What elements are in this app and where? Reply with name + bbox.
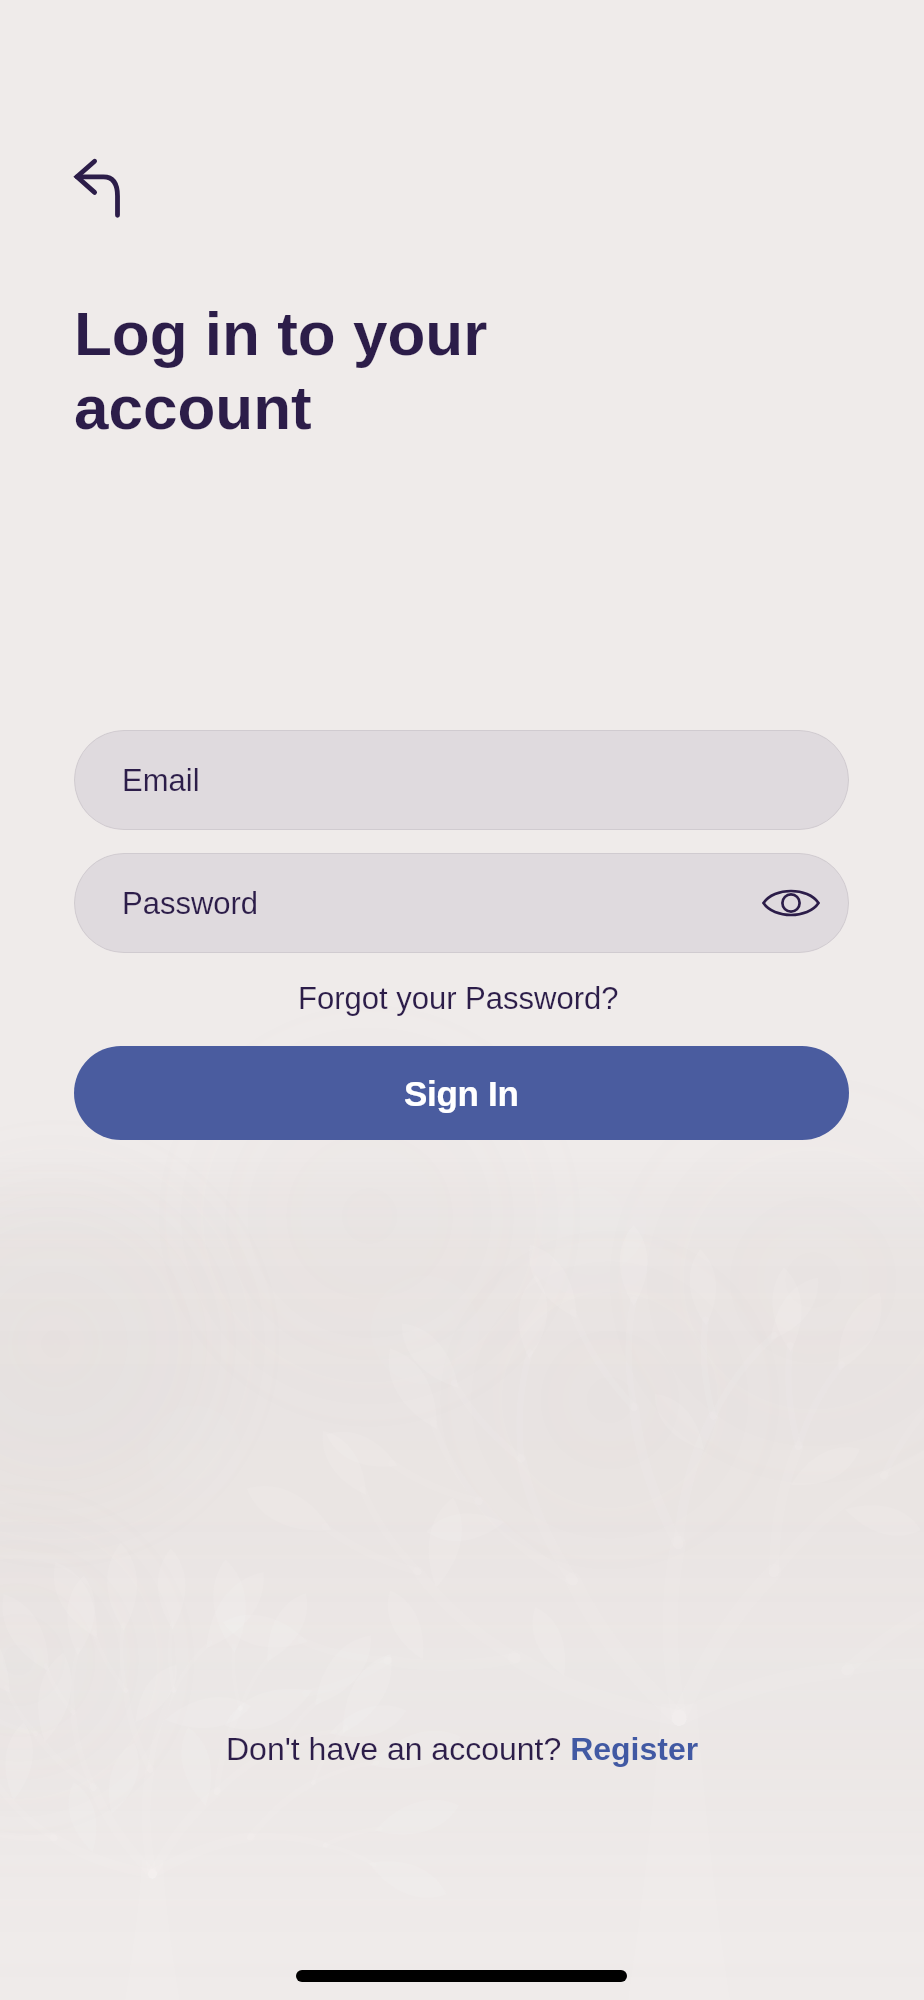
button[interactable]: Show password <box>753 865 829 941</box>
staticText: Sign In <box>404 1074 519 1113</box>
button[interactable]: Email <box>74 730 849 830</box>
button[interactable]: Password <box>74 853 849 953</box>
staticText: Password <box>122 886 259 921</box>
staticText: Log in to your account <box>74 299 488 442</box>
button[interactable]: Don't have an account? Register <box>218 1726 707 1772</box>
staticText: Email <box>122 763 200 798</box>
button[interactable]: Back <box>57 139 141 223</box>
button[interactable]: Forgot your Password? <box>288 976 629 1021</box>
button[interactable]: Sign In <box>74 1046 849 1140</box>
